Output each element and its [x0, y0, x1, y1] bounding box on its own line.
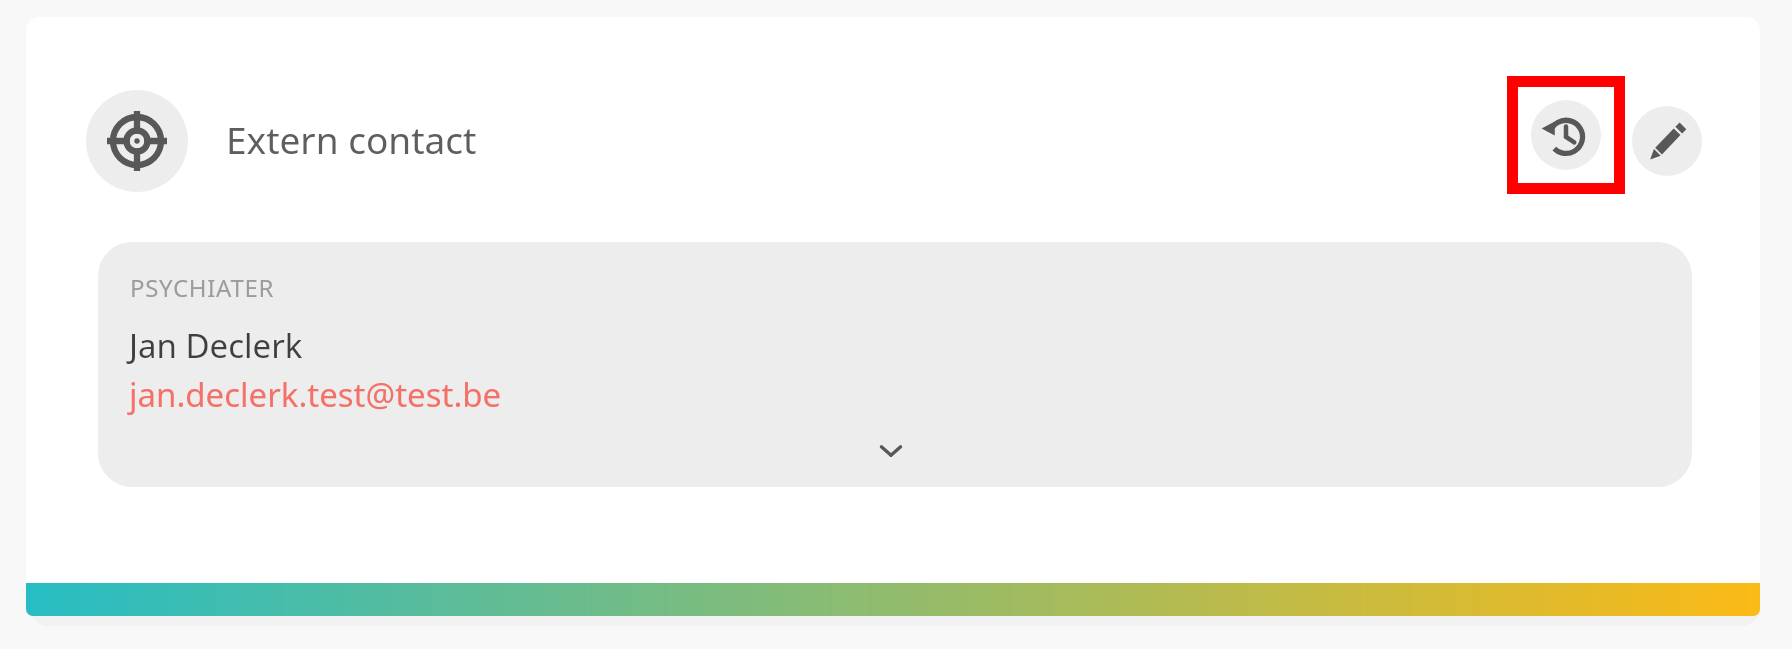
staticText: jan.declerk.test@test.be	[129, 372, 502, 417]
button[interactable]: Expand	[869, 429, 913, 473]
button[interactable]: Edit	[1632, 106, 1702, 176]
button[interactable]: History	[1507, 76, 1625, 194]
staticText: PSYCHIATER	[130, 271, 275, 304]
staticText: Jan Declerk	[129, 323, 303, 368]
staticText: Extern contact	[226, 114, 477, 164]
button[interactable]: PSYCHIATER	[98, 242, 1692, 487]
button[interactable]: Extern contact	[86, 90, 188, 192]
